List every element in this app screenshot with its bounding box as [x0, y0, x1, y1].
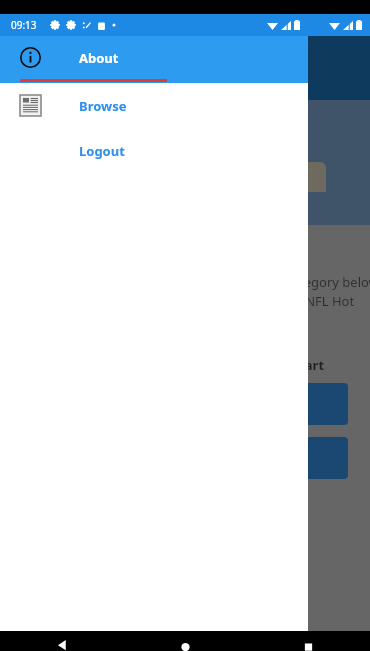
button[interactable]: About	[0, 36, 308, 78]
other: Browse	[20, 95, 41, 116]
button[interactable]	[250, 437, 348, 479]
button[interactable]: Home	[124, 631, 247, 651]
button[interactable]: Back	[0, 631, 124, 651]
staticText: Browse	[79, 97, 127, 115]
staticText: Logout	[79, 142, 125, 160]
staticText: 09:13	[11, 18, 37, 32]
button[interactable]: Browse	[0, 83, 308, 128]
button[interactable]: Logout	[0, 128, 308, 173]
staticText: Tap a category below to see National NFL…	[250, 273, 370, 310]
staticText: 09:13	[11, 18, 37, 32]
button[interactable]: Recent apps	[247, 631, 370, 651]
other: About	[20, 47, 41, 68]
staticText: About	[79, 49, 119, 67]
button[interactable]	[250, 383, 348, 425]
staticText: Start	[292, 356, 325, 374]
